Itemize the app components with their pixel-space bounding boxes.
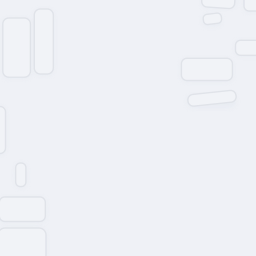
button[interactable]: Tile 2 [34,9,53,74]
button[interactable]: Tile 7 [202,0,235,8]
button[interactable]: Tile 12 [188,92,236,104]
button[interactable]: Tile 3 [0,106,5,153]
button[interactable]: Tile 10 [235,40,256,55]
button[interactable]: Tile 9 [244,0,256,11]
button[interactable]: Tile 4 [16,163,26,187]
button[interactable]: Tile 11 [181,58,232,80]
button[interactable]: Tile 8 [203,14,221,24]
button[interactable]: Tile 1 [3,18,30,77]
button[interactable]: Tile 5 [0,197,45,221]
